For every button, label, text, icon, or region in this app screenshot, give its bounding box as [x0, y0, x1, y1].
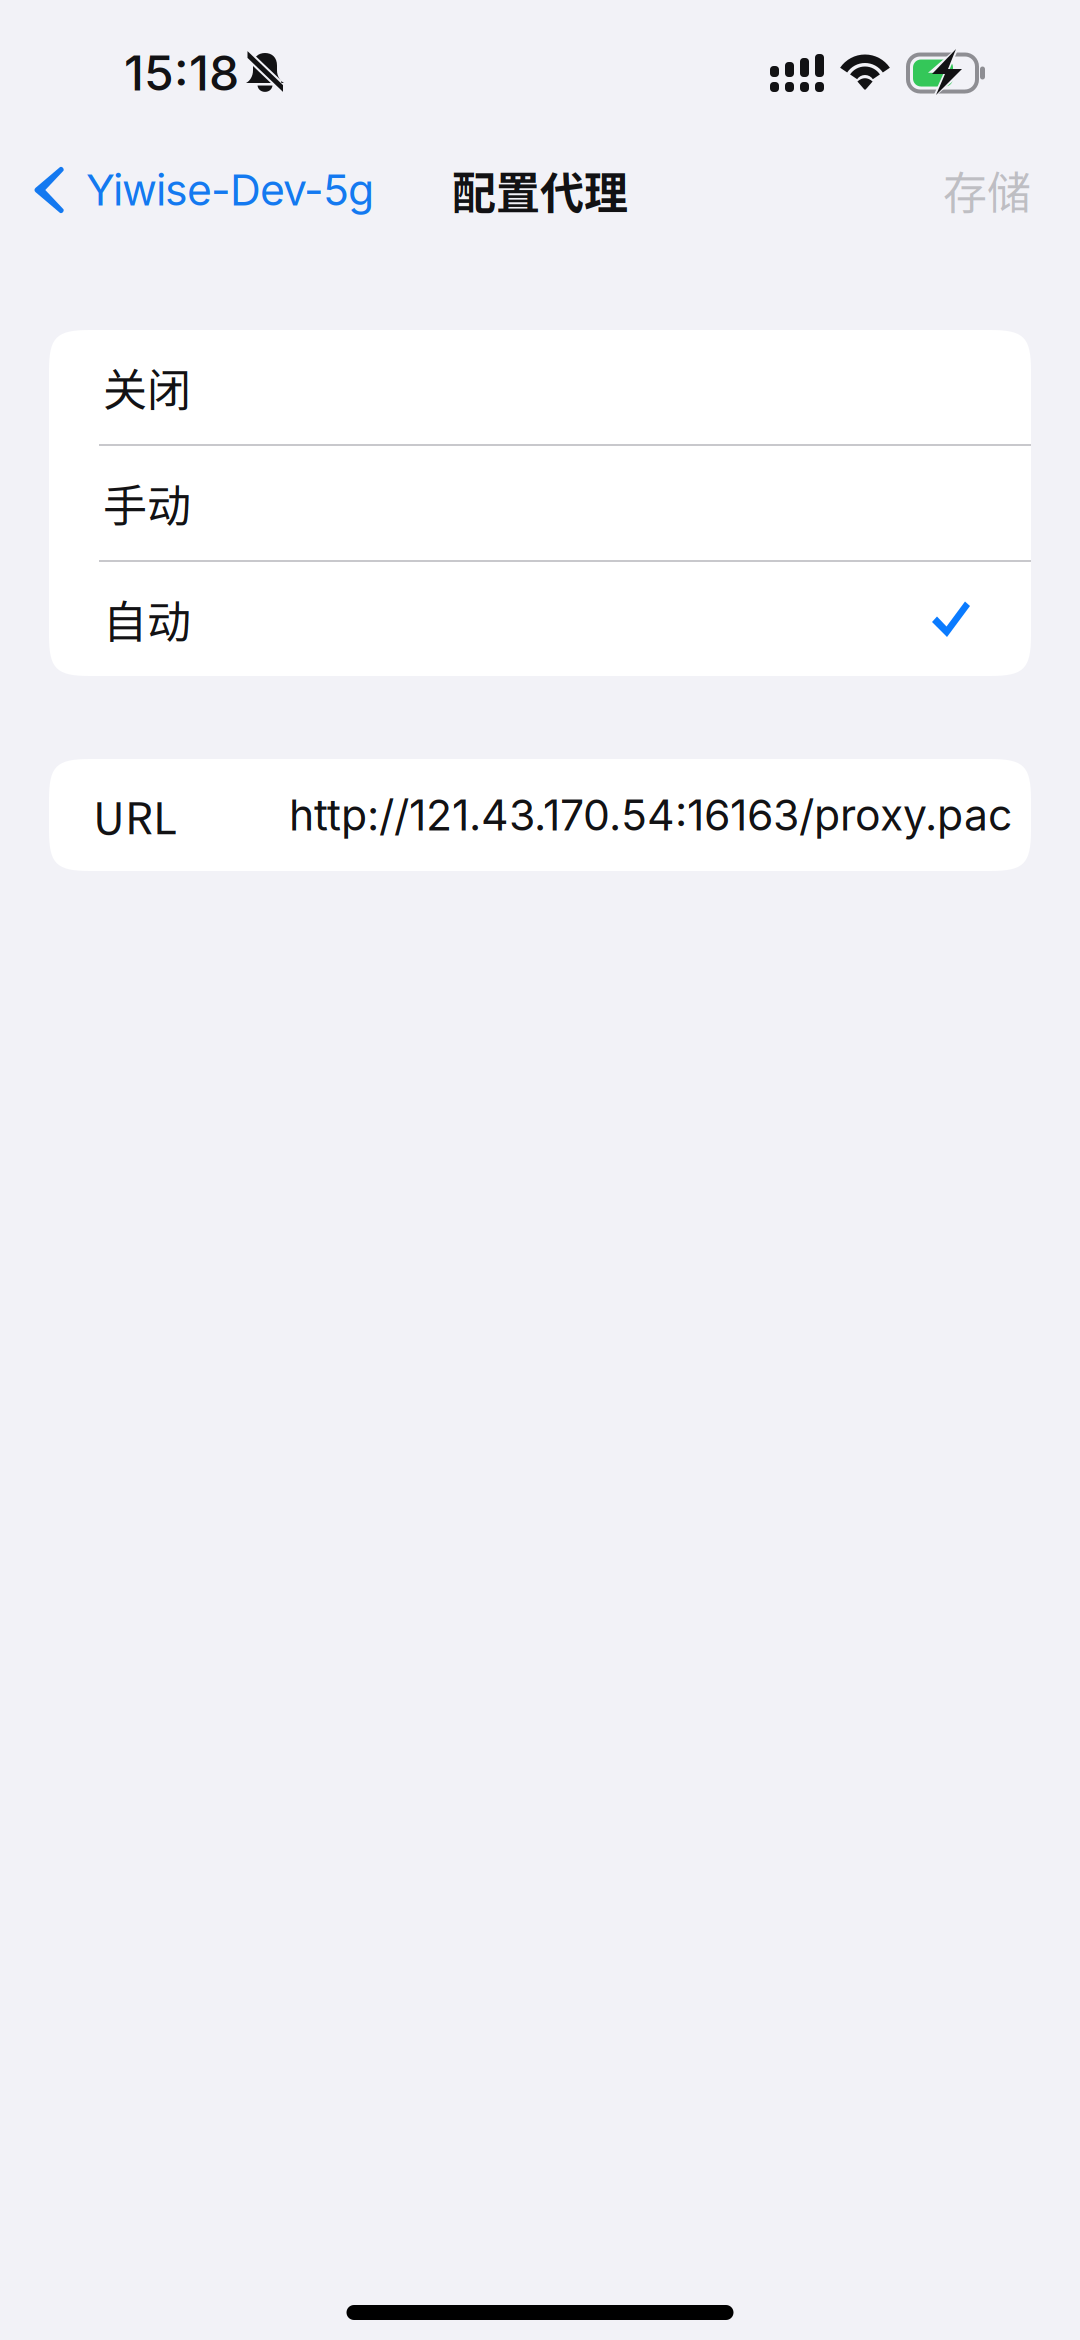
button[interactable]: 手动 — [49, 446, 1031, 560]
button[interactable]: 自动 — [49, 562, 1031, 676]
staticText: 关闭 — [103, 355, 191, 419]
staticText: 15:18 — [124, 44, 239, 102]
button[interactable]: Yiwise-Dev-5g — [0, 142, 394, 238]
button[interactable]: URL — [49, 759, 1031, 871]
button[interactable]: 存储 — [923, 142, 1051, 238]
staticText: 自动 — [103, 587, 191, 651]
staticText: http://121.43.170.54:16163/proxy.pac — [289, 789, 1012, 841]
staticText: URL — [93, 783, 177, 847]
staticText: Yiwise-Dev-5g — [86, 164, 374, 216]
staticText: 配置代理 — [452, 158, 628, 222]
staticText: 存储 — [943, 158, 1031, 222]
staticText: 手动 — [103, 471, 191, 535]
button[interactable]: 关闭 — [49, 330, 1031, 444]
